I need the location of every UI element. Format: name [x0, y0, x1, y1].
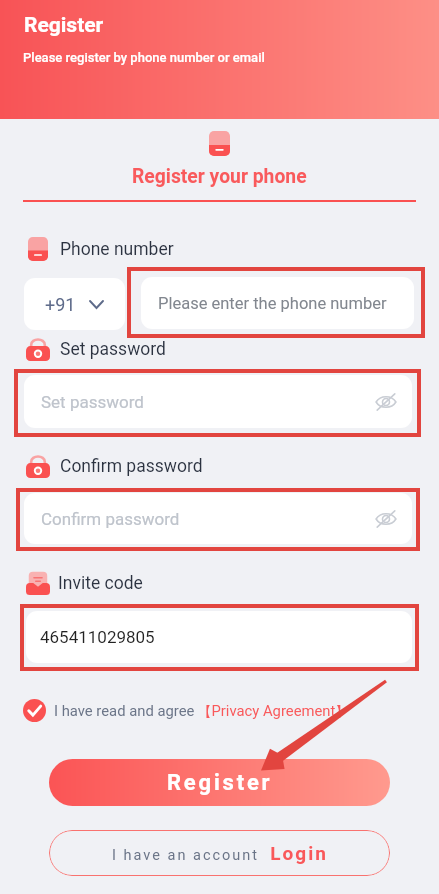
- staticText: Confirm password: [41, 509, 180, 529]
- button[interactable]: Register your phone: [0, 131, 439, 188]
- staticText: Confirm password: [60, 456, 203, 477]
- button[interactable]: Show password: [372, 388, 400, 416]
- staticText: 465411029805: [40, 627, 155, 647]
- staticText: Phone number: [60, 239, 174, 260]
- button[interactable]: +91: [24, 278, 125, 330]
- button[interactable]: Register: [49, 759, 390, 806]
- button[interactable]: Agree to privacy agreement: [23, 699, 46, 722]
- button[interactable]: 465411029805: [26, 611, 412, 663]
- button[interactable]: Please enter the phone number: [141, 277, 414, 329]
- staticText: Invite code: [58, 573, 143, 594]
- button[interactable]: Confirm password: [24, 493, 412, 544]
- staticText: Register your phone: [132, 165, 307, 188]
- button[interactable]: Show password: [372, 505, 400, 533]
- staticText: Please register by phone number or email: [23, 50, 265, 65]
- button[interactable]: I have an account Login: [49, 830, 390, 876]
- staticText: Set password: [41, 392, 144, 412]
- button[interactable]: Set password: [24, 375, 412, 428]
- staticText: +91: [45, 294, 76, 315]
- staticText: Register: [167, 770, 273, 796]
- staticText: Set password: [60, 339, 166, 360]
- staticText: Please enter the phone number: [158, 294, 387, 313]
- button[interactable]: I have read and agree 【Privacy Agreement…: [54, 702, 349, 720]
- staticText: Register: [24, 13, 104, 38]
- staticText: I have an account Login: [112, 842, 328, 864]
